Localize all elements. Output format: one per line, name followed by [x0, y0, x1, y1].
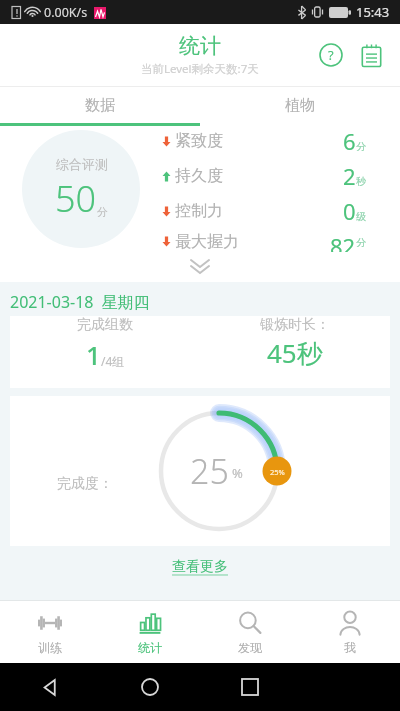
staticText: 0 [343, 196, 356, 226]
button[interactable]: Expand [0, 252, 400, 282]
staticText: 数据 [85, 96, 115, 115]
staticText: 分 [356, 140, 366, 153]
button[interactable]: 数据 [0, 87, 200, 123]
staticText: % [232, 464, 243, 482]
button[interactable]: Recents [200, 663, 300, 711]
staticText: 45秒 [267, 335, 323, 371]
staticText: 植物 [285, 96, 315, 115]
button[interactable]: 统计 [100, 601, 200, 663]
staticText: 统计 [179, 33, 221, 59]
staticText: 持久度 [175, 166, 223, 186]
staticText: 统计 [138, 640, 162, 655]
staticText: 分 [356, 236, 366, 249]
staticText: 综合评测 [56, 156, 108, 172]
staticText: 15:43 [356, 3, 390, 21]
staticText: /4组 [101, 353, 125, 369]
staticText: 秒 [356, 175, 366, 188]
button[interactable]: Back [0, 663, 100, 711]
staticText: 最大握力 [175, 232, 239, 252]
button[interactable]: 我 [300, 601, 400, 663]
staticText: 1 [86, 337, 101, 372]
staticText: 控制力 [175, 201, 223, 221]
staticText: 2021-03-18 星期四 [10, 291, 150, 313]
button[interactable]: 查看更多 [172, 558, 228, 576]
staticText: 82 [330, 231, 356, 252]
staticText: 0.00K/s [44, 4, 88, 21]
button[interactable]: 训练 [0, 601, 100, 663]
staticText: 6 [343, 126, 356, 156]
button[interactable]: Records [354, 38, 388, 72]
button[interactable]: 植物 [200, 87, 400, 123]
staticText: 紧致度 [175, 131, 223, 151]
button[interactable]: 发现 [200, 601, 300, 663]
staticText: 训练 [38, 640, 62, 655]
staticText: 发现 [238, 640, 262, 655]
staticText: 当前Level剩余天数:7天 [141, 61, 259, 77]
staticText: 查看更多 [172, 558, 228, 576]
button[interactable]: Help [314, 38, 348, 72]
staticText: 25% [270, 467, 285, 477]
staticText: 级 [356, 210, 366, 223]
staticText: 分 [97, 205, 108, 219]
staticText: 2 [343, 161, 356, 191]
staticText: 完成组数 [77, 316, 133, 334]
staticText: 我 [344, 640, 356, 655]
staticText: 完成度： [57, 475, 113, 493]
staticText: 25 [190, 448, 229, 494]
staticText: 锻炼时长： [260, 316, 330, 334]
staticText: ? [328, 46, 334, 64]
button[interactable]: Home [100, 663, 200, 711]
staticText: 50 [55, 174, 97, 223]
